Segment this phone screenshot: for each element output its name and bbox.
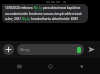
staticText: 14592024 referans No.lu para aktarimasi …	[5, 6, 85, 21]
button[interactable]: Send	[86, 44, 97, 55]
button[interactable]: Recent apps	[7, 58, 31, 74]
button[interactable]: 14592024 referans No.lu para aktarimasi …	[2, 4, 88, 23]
button[interactable]: Home	[38, 58, 62, 74]
staticText: Mesaj	[20, 47, 77, 52]
button[interactable]: Sticker	[77, 47, 81, 53]
button[interactable]: Back	[69, 58, 93, 74]
button[interactable]: Mesaj	[17, 44, 84, 55]
button[interactable]: Add attachment	[3, 44, 14, 55]
